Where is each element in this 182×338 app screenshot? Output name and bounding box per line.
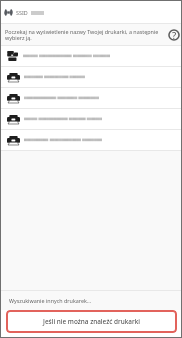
button[interactable]: SSID xyxy=(1,1,181,23)
button[interactable] xyxy=(1,46,181,66)
button[interactable]: Jeśli nie można znaleźć drukarki xyxy=(6,310,177,333)
staticText: ? xyxy=(172,29,177,41)
staticText: Wyszukiwanie innych drukarek... xyxy=(9,297,92,304)
button[interactable] xyxy=(1,109,181,129)
button[interactable] xyxy=(1,67,181,87)
staticText: Jeśli nie można znaleźć drukarki xyxy=(43,317,140,326)
button[interactable] xyxy=(1,88,181,108)
button[interactable] xyxy=(1,130,181,150)
button[interactable]: Pomoc xyxy=(167,28,180,41)
staticText: SSID xyxy=(16,9,28,16)
staticText: Poczekaj na wyświetlenie nazwy Twojej dr… xyxy=(5,28,161,42)
